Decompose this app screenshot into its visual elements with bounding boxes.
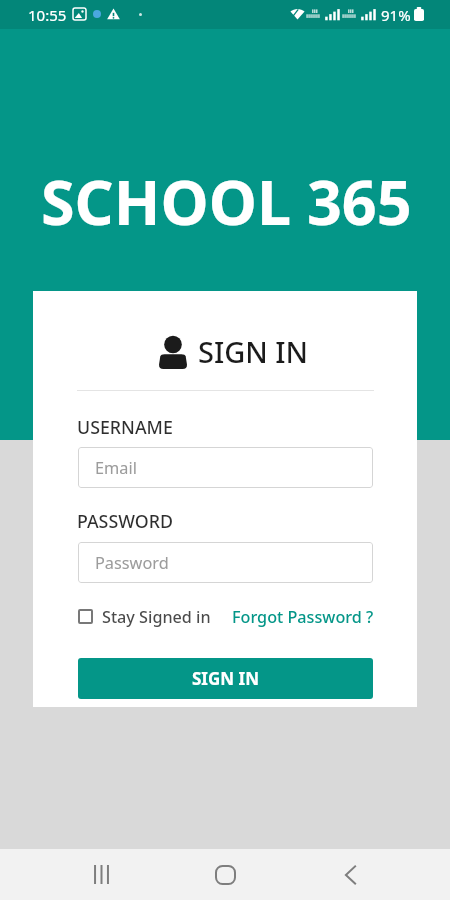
- button[interactable]: Forgot Password ?: [232, 603, 374, 630]
- staticText: SCHOOL 365: [41, 160, 412, 243]
- staticText: Forgot Password ?: [232, 606, 374, 627]
- staticText: SIGN IN: [198, 332, 309, 371]
- staticText: Password: [95, 552, 169, 574]
- staticText: 91%: [381, 5, 411, 25]
- button[interactable]: Home: [156, 849, 294, 900]
- button[interactable]: Back: [294, 849, 406, 900]
- button[interactable]: Recent apps: [44, 849, 156, 900]
- staticText: USERNAME: [77, 415, 173, 439]
- staticText: SIGN IN: [192, 667, 259, 690]
- button[interactable]: Password: [78, 542, 373, 583]
- staticText: Stay Signed in: [102, 606, 211, 627]
- button[interactable]: SIGN IN: [78, 658, 373, 699]
- button[interactable]: Email: [78, 447, 373, 488]
- staticText: Email: [95, 457, 137, 479]
- staticText: PASSWORD: [77, 509, 173, 533]
- staticText: 10:55: [28, 5, 67, 25]
- button[interactable]: Stay Signed in: [78, 603, 211, 630]
